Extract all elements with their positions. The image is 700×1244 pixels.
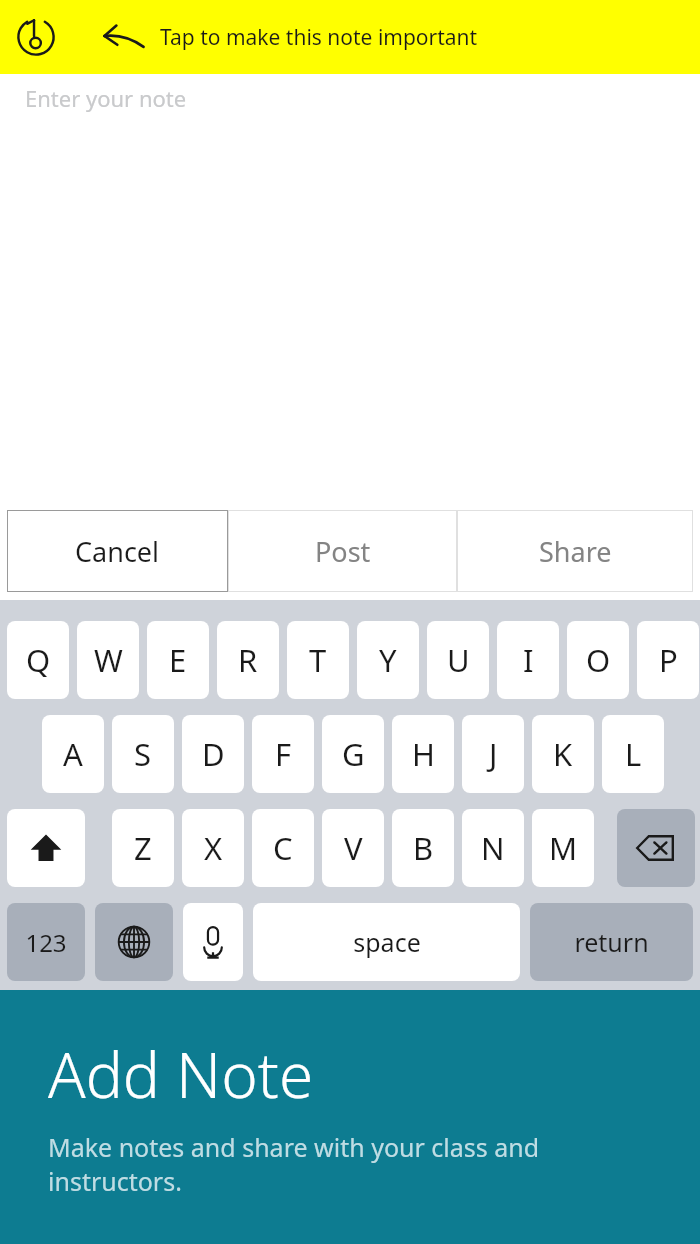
staticText: Share: [539, 533, 612, 570]
staticText: E: [169, 639, 187, 681]
button[interactable]: H: [392, 715, 454, 793]
staticText: X: [204, 827, 223, 869]
staticText: K: [553, 733, 573, 775]
staticText: C: [273, 827, 293, 869]
staticText: Enter your note: [25, 83, 187, 113]
button[interactable]: space: [253, 903, 520, 981]
staticText: J: [489, 733, 498, 775]
button[interactable]: D: [182, 715, 244, 793]
staticText: N: [481, 827, 505, 869]
button[interactable]: M: [532, 809, 594, 887]
staticText: Q: [26, 639, 51, 681]
button[interactable]: S: [112, 715, 174, 793]
button[interactable]: G: [322, 715, 384, 793]
staticText: A: [63, 733, 83, 775]
button[interactable]: U: [427, 621, 489, 699]
staticText: Y: [379, 639, 397, 681]
button[interactable]: W: [77, 621, 139, 699]
button[interactable]: Y: [357, 621, 419, 699]
staticText: M: [549, 827, 578, 869]
button[interactable]: E: [147, 621, 209, 699]
button[interactable]: Shift: [7, 809, 85, 887]
staticText: Z: [134, 827, 152, 869]
staticText: W: [94, 639, 123, 681]
staticText: P: [659, 639, 678, 681]
button[interactable]: return: [530, 903, 693, 981]
staticText: R: [238, 639, 258, 681]
button[interactable]: R: [217, 621, 279, 699]
button[interactable]: Post: [228, 510, 457, 592]
button[interactable]: L: [602, 715, 664, 793]
staticText: space: [353, 925, 421, 959]
staticText: Add Note: [48, 1032, 314, 1116]
staticText: H: [412, 733, 435, 775]
staticText: Tap to make this note important: [160, 23, 478, 52]
button[interactable]: Enter your note: [0, 74, 700, 122]
button[interactable]: P: [637, 621, 699, 699]
button[interactable]: J: [462, 715, 524, 793]
button[interactable]: I: [497, 621, 559, 699]
button[interactable]: F: [252, 715, 314, 793]
button[interactable]: Cancel: [7, 510, 228, 592]
staticText: 123: [25, 926, 67, 959]
staticText: L: [625, 733, 642, 775]
button[interactable]: A: [42, 715, 104, 793]
staticText: G: [342, 733, 365, 775]
staticText: T: [309, 639, 327, 681]
staticText: S: [134, 733, 152, 775]
staticText: B: [413, 827, 434, 869]
button[interactable]: Dictate: [183, 903, 243, 981]
button[interactable]: Switch keyboard: [95, 903, 173, 981]
staticText: I: [523, 639, 534, 681]
staticText: Make notes and share with your class and…: [48, 1130, 540, 1198]
button[interactable]: Backspace: [617, 809, 695, 887]
staticText: Post: [315, 533, 371, 570]
button[interactable]: Tap to make this note important: [0, 0, 700, 74]
button[interactable]: Share: [457, 510, 693, 592]
button[interactable]: V: [322, 809, 384, 887]
button[interactable]: T: [287, 621, 349, 699]
button[interactable]: X: [182, 809, 244, 887]
button[interactable]: N: [462, 809, 524, 887]
button[interactable]: Z: [112, 809, 174, 887]
staticText: return: [574, 925, 649, 959]
button[interactable]: O: [567, 621, 629, 699]
staticText: D: [202, 733, 225, 775]
button[interactable]: K: [532, 715, 594, 793]
button[interactable]: Q: [7, 621, 69, 699]
staticText: Cancel: [75, 533, 160, 570]
button[interactable]: 123: [7, 903, 85, 981]
staticText: F: [275, 733, 292, 775]
button[interactable]: C: [252, 809, 314, 887]
staticText: O: [586, 639, 611, 681]
staticText: U: [447, 639, 470, 681]
button[interactable]: B: [392, 809, 454, 887]
staticText: V: [344, 827, 363, 869]
